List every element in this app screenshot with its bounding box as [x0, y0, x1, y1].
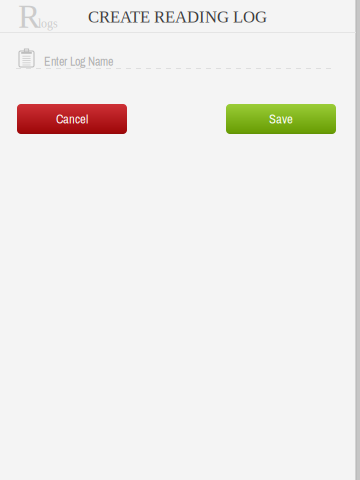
button[interactable]: Cancel — [17, 104, 127, 134]
staticText: R — [18, 0, 40, 35]
button[interactable]: Save — [226, 104, 336, 134]
staticText: logs — [38, 17, 58, 30]
staticText: CREATE READING LOG — [88, 8, 267, 26]
staticText: Cancel — [56, 110, 88, 128]
staticText: Enter Log Name — [44, 53, 113, 70]
staticText: Save — [269, 110, 293, 128]
